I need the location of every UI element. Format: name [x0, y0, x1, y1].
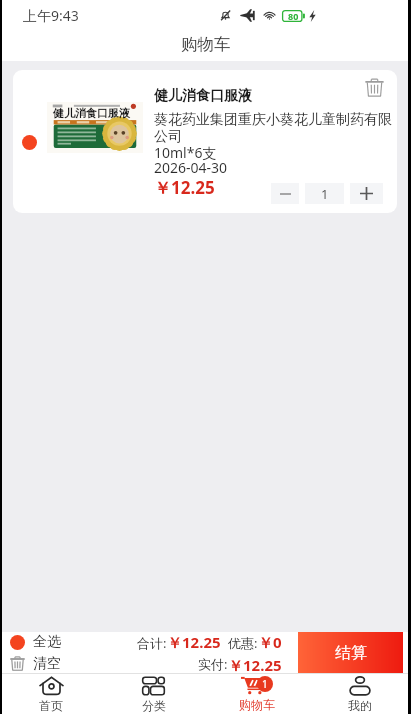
- staticText: 购物车: [239, 697, 275, 712]
- staticText: ￥12.25: [154, 176, 215, 199]
- staticText: ￥0: [258, 632, 282, 652]
- staticText: ￥12.25: [167, 632, 221, 652]
- button[interactable]: Delete: [357, 70, 391, 104]
- button[interactable]: Select item: [15, 128, 43, 156]
- staticText: ￥12.25: [228, 655, 282, 673]
- staticText: 1: [262, 677, 268, 691]
- staticText: 健儿消食口服液: [53, 106, 130, 120]
- staticText: 葵花药业集团重庆小葵花儿童制药有限公司: [154, 111, 397, 145]
- button[interactable]: 首页: [0, 674, 102, 714]
- staticText: 清空: [33, 655, 61, 672]
- button[interactable]: 清空: [10, 654, 61, 673]
- staticText: 1: [321, 185, 329, 203]
- button[interactable]: 我的: [308, 674, 411, 714]
- staticText: 结算: [335, 643, 367, 663]
- button[interactable]: 结算: [298, 632, 403, 673]
- staticText: 合计:: [137, 634, 167, 652]
- button[interactable]: Increase: [350, 183, 383, 204]
- button[interactable]: 全选: [10, 632, 61, 652]
- staticText: 优惠:: [228, 634, 258, 652]
- staticText: 实付:: [198, 655, 228, 673]
- staticText: 首页: [39, 698, 63, 713]
- staticText: 健儿消食口服液: [154, 87, 252, 105]
- staticText: 分类: [142, 698, 166, 713]
- button[interactable]: 分类: [102, 674, 205, 714]
- staticText: 全选: [33, 633, 61, 651]
- button[interactable]: Select item: [13, 70, 397, 213]
- staticText: 10ml*6支: [154, 143, 217, 162]
- staticText: 2026-04-30: [154, 158, 228, 177]
- button[interactable]: 1: [205, 674, 308, 714]
- staticText: 我的: [348, 698, 372, 713]
- button[interactable]: Decrease: [271, 183, 299, 204]
- staticText: 80: [288, 10, 299, 22]
- staticText: 上午9:43: [23, 6, 79, 25]
- staticText: 购物车: [181, 34, 231, 55]
